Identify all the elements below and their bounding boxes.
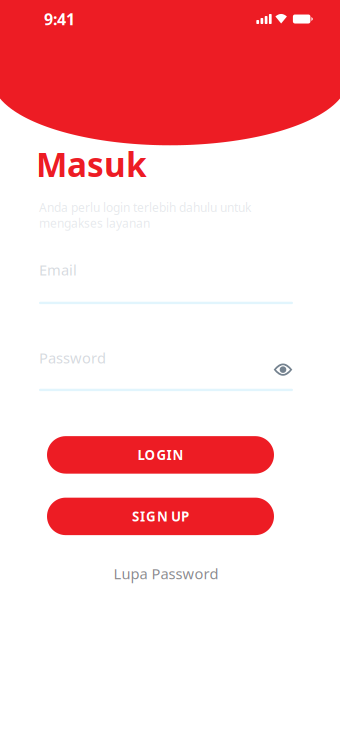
staticText: S I G N UP [132,507,189,525]
staticText: LO GI N [137,446,183,464]
staticText: Password [39,348,106,368]
button[interactable]: S I G N UP [47,498,274,535]
staticText: Anda perlu login terlebih dahulu untuk m… [39,199,251,231]
button[interactable]: Show password [273,362,293,378]
button[interactable]: Lupa Password [39,564,293,583]
staticText: Masuk [36,142,147,186]
staticText: Lupa Password [113,564,218,583]
button[interactable]: LO GI N [47,436,274,474]
staticText: 9:41 [44,8,75,30]
staticText: Email [39,260,77,280]
